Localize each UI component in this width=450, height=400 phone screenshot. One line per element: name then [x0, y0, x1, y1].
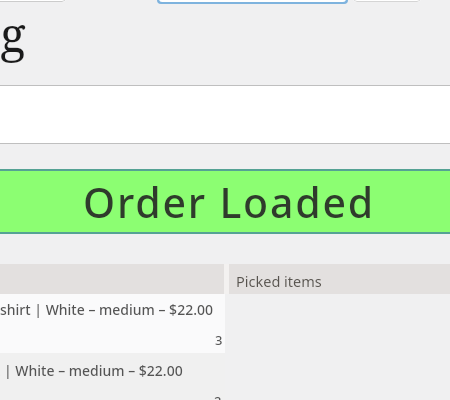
button[interactable]: Button: [353, 0, 421, 2]
staticText: 3: [215, 331, 223, 349]
staticText: Order Loaded: [83, 174, 375, 230]
button[interactable]: shirt | White – medium – $22.00: [0, 294, 225, 353]
button[interactable]: t | White – medium – $22.00: [0, 353, 225, 400]
staticText: g: [0, 1, 26, 66]
staticText: 2: [214, 392, 222, 400]
button[interactable]: Search field: [0, 0, 66, 2]
button[interactable]: Active field: [157, 0, 348, 4]
staticText: shirt | White – medium – $22.00: [0, 300, 213, 319]
staticText: t | White – medium – $22.00: [0, 361, 183, 380]
staticText: Picked items: [236, 271, 322, 291]
button[interactable]: Order Loaded: [0, 171, 450, 232]
